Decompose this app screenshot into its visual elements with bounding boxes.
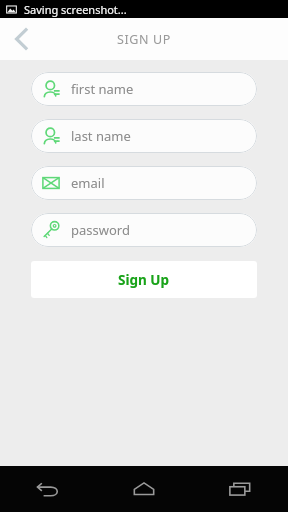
staticText: last name bbox=[71, 127, 131, 145]
staticText: password bbox=[71, 221, 130, 239]
button[interactable]: last name bbox=[31, 119, 257, 153]
button[interactable]: Sign Up bbox=[31, 261, 257, 298]
button[interactable]: Back bbox=[0, 18, 44, 60]
button[interactable]: Recent apps bbox=[209, 466, 271, 512]
staticText: email bbox=[71, 174, 105, 192]
button[interactable]: Back bbox=[17, 466, 79, 512]
button[interactable]: Home bbox=[113, 466, 175, 512]
button[interactable]: email bbox=[31, 166, 257, 200]
staticText: Sign Up bbox=[118, 271, 170, 289]
button[interactable]: first name bbox=[31, 72, 257, 106]
button[interactable]: password bbox=[31, 213, 257, 247]
staticText: SIGN UP bbox=[117, 31, 171, 48]
staticText: first name bbox=[71, 80, 134, 98]
staticText: Saving screenshot... bbox=[24, 2, 127, 17]
